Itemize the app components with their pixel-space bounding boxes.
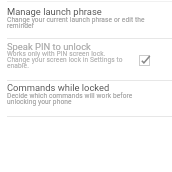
staticText: Speak PIN to unlock <box>7 41 91 52</box>
staticText: Manage launch phrase <box>7 6 102 17</box>
staticText: Change your current launch phrase or edi… <box>7 16 145 24</box>
staticText: Decide which commands will work before <box>7 92 133 100</box>
button[interactable] <box>0 80 172 116</box>
staticText: Commands while locked <box>7 82 110 93</box>
button[interactable] <box>0 2 172 38</box>
button[interactable] <box>0 38 172 80</box>
staticText: reminder <box>7 22 34 30</box>
staticText: enable. <box>7 62 29 70</box>
staticText: Works only with PIN screen lock. <box>7 50 106 58</box>
staticText: Change your screen lock in Settings to <box>7 56 123 64</box>
staticText: unlocking your phone <box>7 98 72 106</box>
